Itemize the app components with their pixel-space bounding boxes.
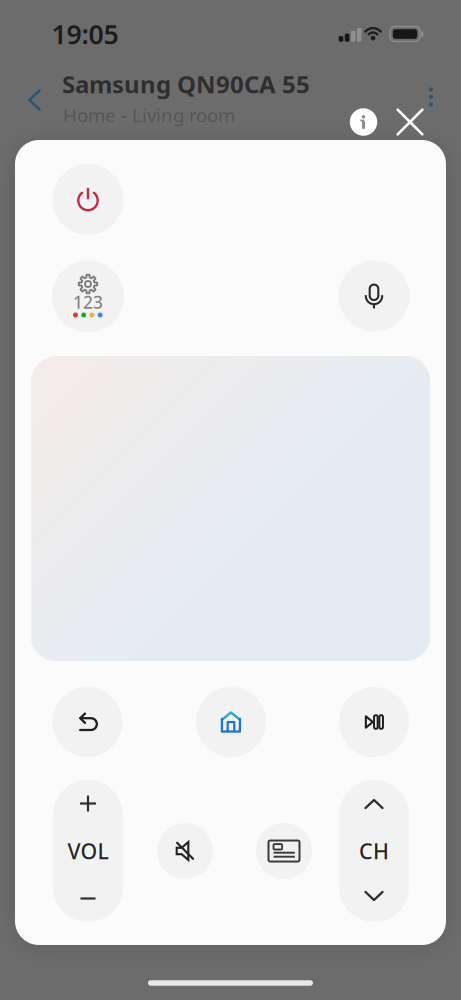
- button[interactable]: Voice input: [338, 260, 409, 331]
- staticText: CH: [359, 837, 389, 865]
- button[interactable]: Play and pause: [339, 687, 409, 757]
- button[interactable]: Back: [52, 687, 122, 757]
- button[interactable]: Channel: [339, 780, 409, 922]
- button[interactable]: Close: [396, 108, 423, 135]
- button[interactable]: Power: [52, 164, 123, 235]
- button[interactable]: Settings and number pad: [52, 260, 124, 332]
- button[interactable]: Mute: [157, 823, 213, 879]
- button[interactable]: Volume: [53, 780, 123, 922]
- staticText: Home - Living room: [63, 103, 235, 127]
- button[interactable]: Touchpad: [31, 356, 430, 661]
- button[interactable]: Channel list: [256, 823, 312, 879]
- button[interactable]: Home: [196, 687, 266, 757]
- staticText: 123: [73, 290, 103, 313]
- staticText: VOL: [67, 837, 108, 865]
- staticText: Samsung QN90CA 55: [62, 68, 310, 100]
- staticText: 19:05: [51, 16, 118, 52]
- button[interactable]: Information: [350, 108, 377, 136]
